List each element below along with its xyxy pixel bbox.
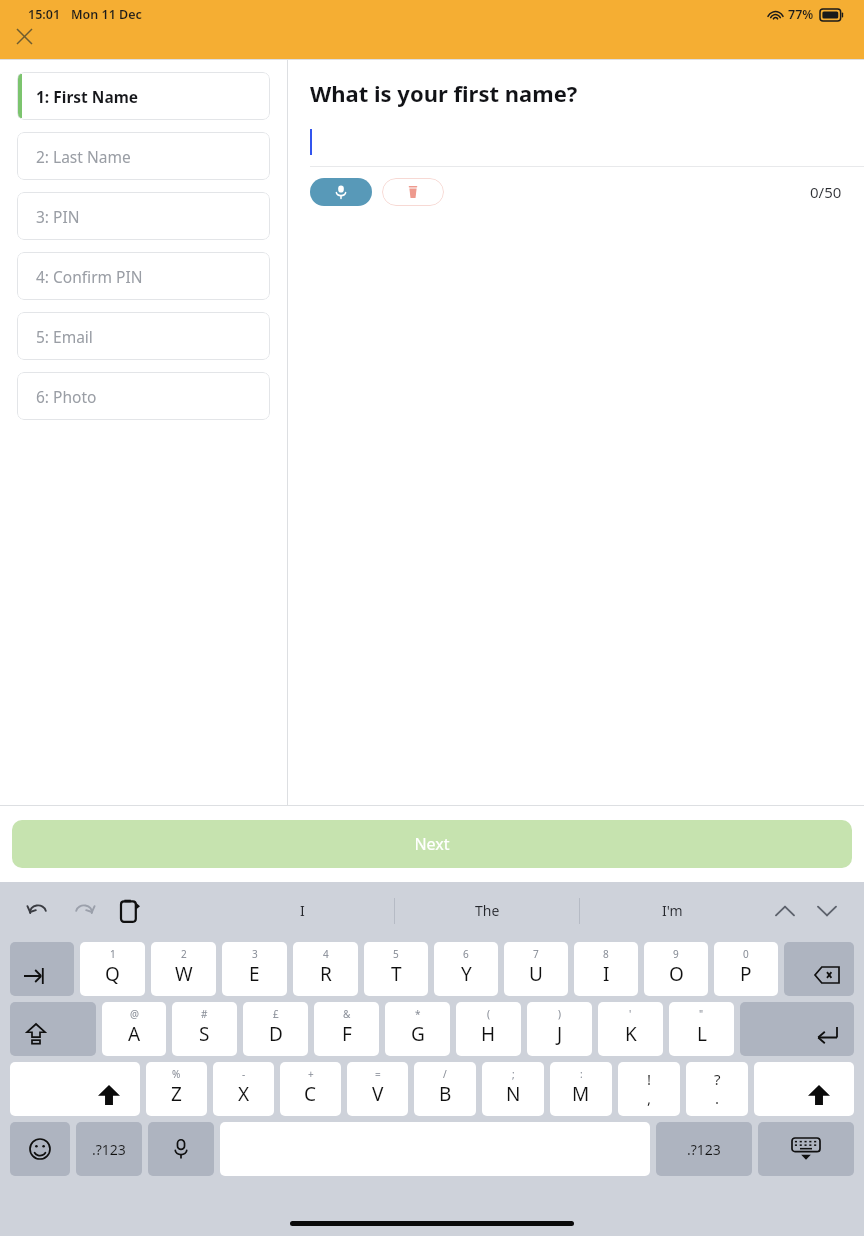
staticText: P [740,961,752,987]
button[interactable]: .?123 [656,1122,752,1176]
button[interactable]: Hide keyboard [758,1122,854,1176]
staticText: / [443,1067,447,1081]
staticText: .?123 [92,1140,126,1159]
button[interactable]: 4: Confirm PIN [17,252,270,300]
button[interactable]: : [550,1062,612,1116]
staticText: X [238,1081,250,1107]
staticText: . [715,1088,720,1108]
button[interactable]: ; [482,1062,544,1116]
button[interactable]: ! [618,1062,680,1116]
staticText: , [647,1088,652,1108]
button[interactable]: ? [686,1062,748,1116]
button[interactable]: 9 [644,942,708,996]
staticText: K [625,1021,637,1047]
button[interactable]: 4 [293,942,358,996]
staticText: 7 [533,947,539,961]
button[interactable]: I'm [580,882,764,939]
staticText: 5: Email [36,326,93,347]
button[interactable]: 5: Email [17,312,270,360]
button[interactable]: & [314,1002,379,1056]
button[interactable]: Close [8,20,40,52]
staticText: 8 [603,947,609,961]
button[interactable]: 2: Last Name [17,132,270,180]
staticText: % [172,1067,181,1081]
staticText: 2: Last Name [36,146,131,167]
button[interactable]: 7 [504,942,568,996]
button[interactable]: ' [598,1002,663,1056]
button[interactable]: 2 [151,942,216,996]
button[interactable]: Shift [754,1062,854,1116]
button[interactable]: @ [102,1002,166,1056]
button[interactable]: 5 [364,942,428,996]
staticText: 3 [252,947,258,961]
staticText: B [439,1081,452,1107]
button[interactable]: + [280,1062,341,1116]
button[interactable]: 6 [434,942,498,996]
staticText: W [175,961,193,987]
button[interactable]: Caps lock [10,1002,96,1056]
button[interactable]: Paste [112,893,148,929]
staticText: " [699,1007,704,1021]
button[interactable]: I [210,882,394,939]
staticText: ( [487,1007,490,1021]
button[interactable]: = [347,1062,408,1116]
button[interactable]: Record voice [310,178,372,206]
button[interactable]: Return [740,1002,854,1056]
button[interactable]: Previous field [764,890,806,932]
button[interactable]: - [213,1062,274,1116]
button[interactable]: 1 [80,942,145,996]
button[interactable]: Backspace [784,942,854,996]
button[interactable]: Dictation [148,1122,214,1176]
staticText: The [475,901,500,920]
staticText: - [242,1067,246,1081]
button[interactable]: 3 [222,942,287,996]
staticText: O [669,961,684,987]
button[interactable]: 8 [574,942,638,996]
button[interactable]: ) [527,1002,592,1056]
staticText: T [391,961,402,987]
staticText: 77% [788,6,814,23]
button[interactable]: ( [456,1002,521,1056]
staticText: Y [461,961,472,987]
staticText: 1: First Name [36,86,139,107]
button[interactable]: 6: Photo [17,372,270,420]
staticText: A [128,1021,141,1047]
staticText: Next [414,833,450,855]
button[interactable]: # [172,1002,237,1056]
staticText: M [572,1081,590,1107]
button[interactable]: % [146,1062,207,1116]
button[interactable]: 1: First Name [17,72,270,120]
button[interactable]: Emoji [10,1122,70,1176]
staticText: : [580,1067,583,1081]
button[interactable]: Tab [10,942,74,996]
button[interactable]: 0 [714,942,778,996]
button[interactable]: / [414,1062,476,1116]
button[interactable]: The [395,882,579,939]
staticText: @ [130,1007,139,1021]
staticText: ! [647,1069,652,1089]
button[interactable]: Shift [10,1062,140,1116]
staticText: # [201,1007,208,1021]
staticText: 15:01 [28,6,61,23]
button[interactable]: Next [12,820,852,868]
button[interactable]: .?123 [76,1122,142,1176]
staticText: ? [714,1069,721,1089]
button[interactable]: Redo [66,893,102,929]
button[interactable]: Delete [382,178,444,206]
staticText: L [697,1021,707,1047]
button[interactable]: " [669,1002,734,1056]
button[interactable]: * [385,1002,450,1056]
button[interactable]: 3: PIN [17,192,270,240]
button[interactable]: Undo [20,893,56,929]
staticText: Z [171,1081,182,1107]
staticText: 2 [181,947,187,961]
staticText: Mon 11 Dec [71,6,142,23]
staticText: 9 [673,947,679,961]
staticText: ; [512,1067,515,1081]
button[interactable]: Next field [806,890,848,932]
staticText: 4 [323,947,329,961]
staticText: ) [558,1007,561,1021]
staticText: = [375,1067,381,1081]
button[interactable]: £ [243,1002,308,1056]
